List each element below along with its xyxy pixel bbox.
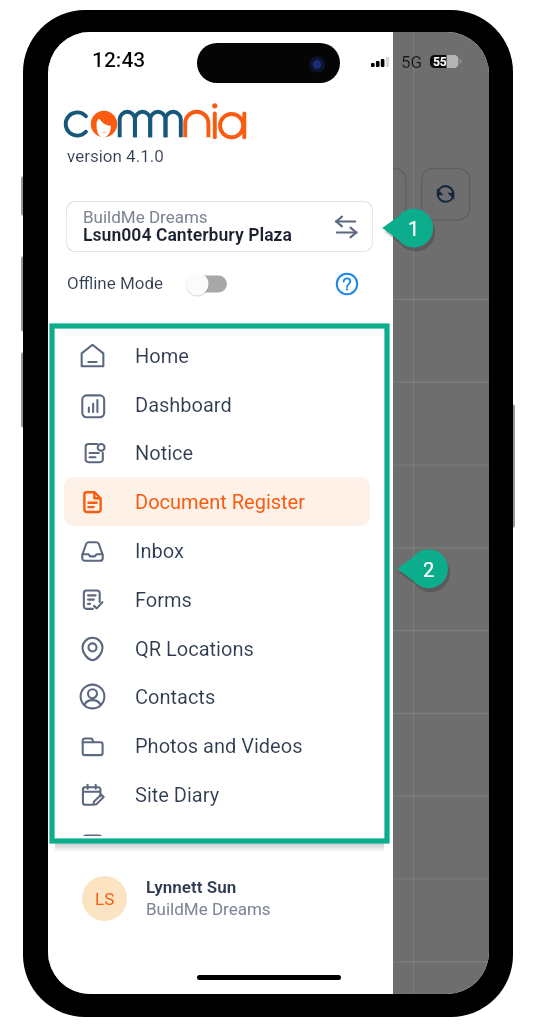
button[interactable]: Home: [64, 331, 370, 380]
staticText: 55: [433, 55, 447, 69]
staticText: BuildMe Dreams: [146, 899, 271, 919]
staticText: Dashboard: [135, 393, 232, 416]
button[interactable]: LS: [48, 864, 393, 932]
staticText: Inbox: [135, 539, 184, 562]
staticText: 2: [423, 558, 435, 581]
staticText: Photos and Videos: [135, 734, 303, 757]
button[interactable]: Contacts: [64, 672, 370, 721]
button[interactable]: Site Diary: [64, 770, 370, 819]
staticText: LS: [95, 889, 115, 909]
button[interactable]: Notice: [64, 428, 370, 477]
staticText: Notice: [135, 441, 194, 464]
staticText: Lynnett Sun: [146, 877, 237, 897]
button[interactable]: Offline Mode toggle: [184, 270, 232, 298]
staticText: 5G: [401, 52, 423, 72]
button[interactable]: Document Register: [64, 477, 370, 526]
button[interactable]: Help: [335, 272, 359, 296]
staticText: Forms: [135, 588, 192, 611]
button[interactable]: Tasks: [64, 819, 370, 836]
staticText: BuildMe Dreams: [83, 207, 208, 227]
staticText: Document Register: [135, 490, 305, 513]
button[interactable]: Inbox: [64, 526, 370, 575]
staticText: Home: [135, 344, 189, 367]
staticText: 12:43: [92, 48, 146, 73]
staticText: Contacts: [135, 685, 216, 708]
staticText: 1: [408, 217, 420, 240]
staticText: version 4.1.0: [67, 146, 164, 166]
staticText: QR Locations: [135, 637, 254, 660]
staticText: Offline Mode: [67, 273, 164, 293]
button[interactable]: Dashboard: [64, 380, 370, 429]
staticText: Lsun004 Canterbury Plaza: [83, 225, 292, 246]
button[interactable]: Photos and Videos: [64, 721, 370, 770]
staticText: Site Diary: [135, 783, 220, 806]
button[interactable]: BuildMe Dreams: [66, 201, 373, 252]
button[interactable]: QR Locations: [64, 624, 370, 673]
button[interactable]: Forms: [64, 575, 370, 624]
